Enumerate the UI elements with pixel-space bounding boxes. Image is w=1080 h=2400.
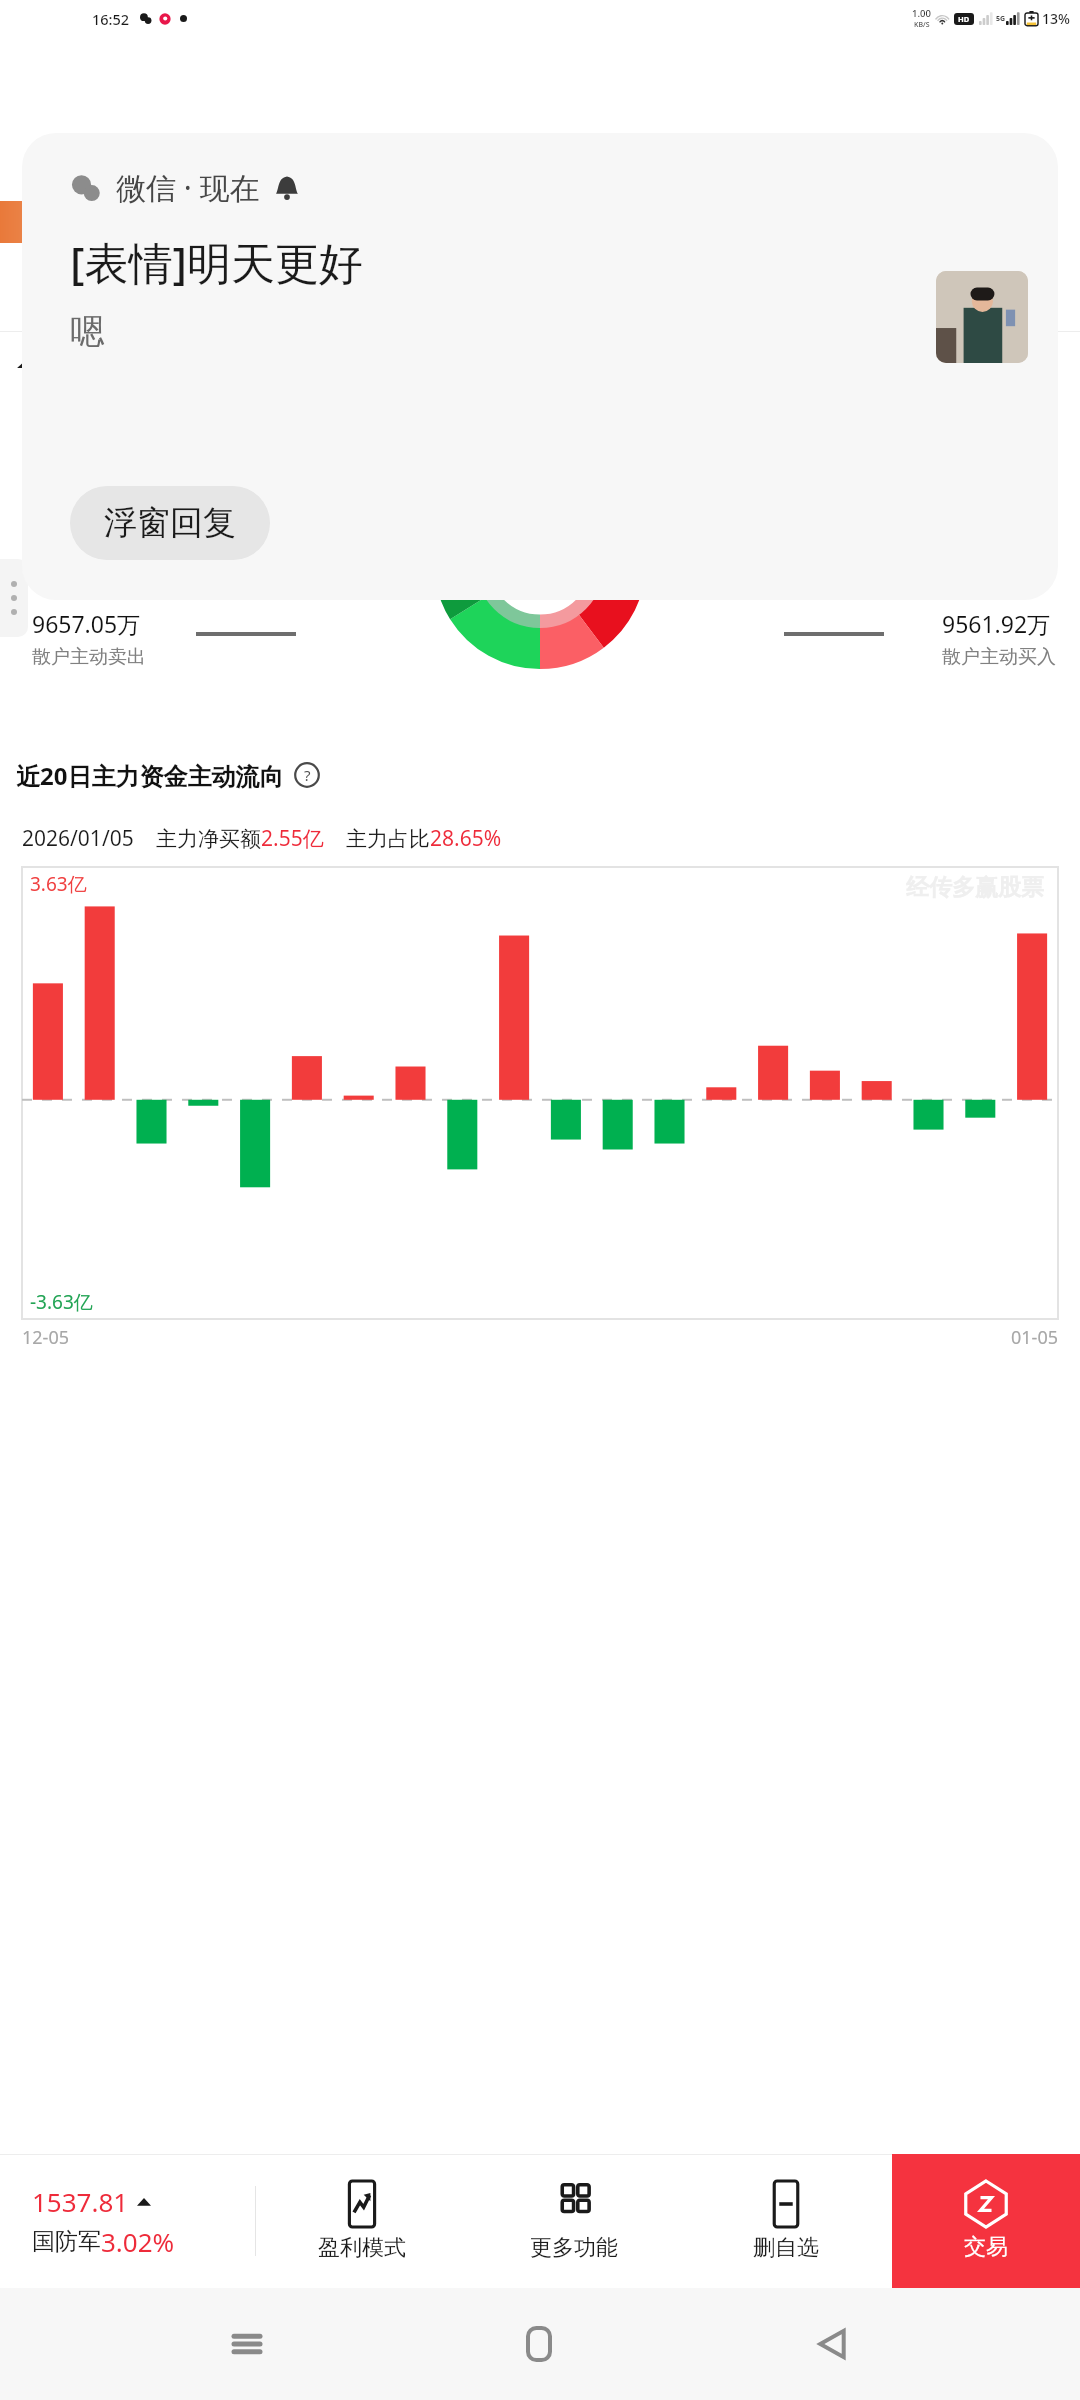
staticText: 16:52 xyxy=(92,9,130,29)
staticText: 1537.81 xyxy=(32,2184,129,2219)
button[interactable]: 删自选 xyxy=(680,2154,892,2288)
staticText: 近20日主力资金主动流向 xyxy=(16,759,284,792)
button[interactable]: 微信 · 现在 xyxy=(22,133,1058,600)
button[interactable]: 近20日主力资金主动流向 xyxy=(0,742,1080,808)
button[interactable]: 更多功能 xyxy=(468,2154,680,2288)
staticText: 12-05 xyxy=(22,1325,69,1350)
staticText: 板块 xyxy=(123,262,165,288)
button[interactable]: 更多 xyxy=(0,559,28,637)
button[interactable]: 浮窗回复 xyxy=(70,486,270,560)
staticText: 经传多赢股票 xyxy=(906,873,1044,902)
button[interactable]: 交易 xyxy=(892,2154,1080,2288)
button[interactable]: 帮助 xyxy=(294,762,320,788)
staticText: -3.63亿 xyxy=(30,1289,93,1315)
button[interactable]: 异动 xyxy=(270,250,354,332)
button[interactable]: 队列 xyxy=(354,250,438,332)
button[interactable]: 资金 xyxy=(14,250,102,332)
button[interactable]: 资金主动流向 xyxy=(0,332,1080,398)
button[interactable]: 板块 xyxy=(102,250,186,332)
staticText: 9561.92万 xyxy=(942,608,1051,639)
staticText: 资金 xyxy=(37,262,79,288)
staticText: 删自选 xyxy=(753,2234,819,2262)
staticText: 5G xyxy=(996,14,1006,24)
staticText: 浮窗回复 xyxy=(104,502,236,544)
staticText: 散户主动买入 xyxy=(942,645,1056,669)
staticText: 主力占比 xyxy=(346,826,430,852)
staticText: 2.55亿 xyxy=(261,824,324,853)
staticText: 异动 xyxy=(291,262,333,288)
button[interactable]: 主页 xyxy=(494,2299,584,2389)
staticText: KB/S xyxy=(914,20,930,30)
button[interactable]: 返回 xyxy=(787,2299,877,2389)
staticText: 嗯 xyxy=(70,310,104,353)
staticText: 2026/01/05 xyxy=(22,824,134,853)
staticText: 28.65% xyxy=(430,824,502,853)
staticText: 国防军 xyxy=(32,2227,101,2256)
staticText: 更多功能 xyxy=(530,2234,618,2262)
staticText: 3.02% xyxy=(101,2224,175,2259)
staticText: 3.63亿 xyxy=(30,871,87,897)
staticText: 9657.05万 xyxy=(32,608,141,639)
staticText: 01-05 xyxy=(1011,1325,1058,1350)
staticText: 1.00 xyxy=(912,7,931,20)
staticText: 扫雷 xyxy=(207,262,249,288)
button[interactable]: 盈利模式 xyxy=(256,2154,468,2288)
staticText: 微信 · 现在 xyxy=(116,167,260,208)
staticText: 主力主动卖出 xyxy=(42,471,156,495)
staticText: ? xyxy=(304,765,311,785)
staticText: 交易 xyxy=(964,2233,1008,2261)
staticText: 13% xyxy=(1042,9,1070,28)
staticText: 盈利模式 xyxy=(318,2234,406,2262)
staticText: 散户主动卖出 xyxy=(32,645,146,669)
button[interactable]: 扫雷 xyxy=(186,250,270,332)
button[interactable]: 最近任务 xyxy=(202,2299,292,2389)
button[interactable]: 1537.81 xyxy=(0,2154,255,2288)
staticText: 主力净买额 xyxy=(156,826,261,852)
staticText: HD xyxy=(958,14,970,24)
staticText: [表情]明天更好 xyxy=(70,232,364,292)
